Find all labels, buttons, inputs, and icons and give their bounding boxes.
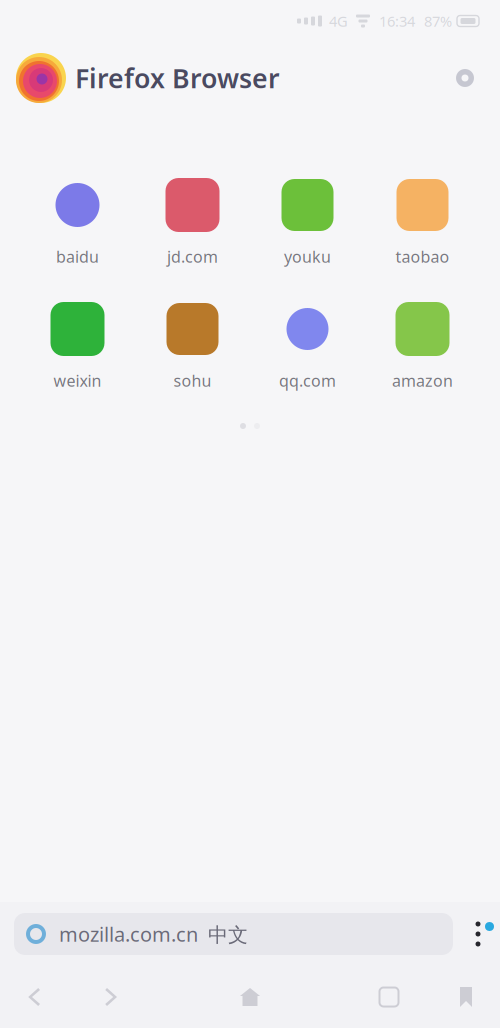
button[interactable]: Forward xyxy=(85,969,137,1025)
button[interactable]: Account xyxy=(442,55,488,101)
staticText: youku xyxy=(284,246,331,267)
staticText: qq.com xyxy=(279,370,336,391)
staticText: baidu xyxy=(56,246,99,267)
button[interactable]: Back xyxy=(8,969,60,1025)
button[interactable]: amazon xyxy=(365,302,480,410)
button[interactable]: Menu xyxy=(458,911,498,957)
staticText: jd.com xyxy=(167,246,218,267)
staticText: taobao xyxy=(395,246,449,267)
staticText: amazon xyxy=(392,370,453,391)
button[interactable]: sohu xyxy=(135,302,250,410)
staticText: mozilla.com.cn 中文 xyxy=(59,921,248,947)
button[interactable]: Home xyxy=(224,969,276,1025)
staticText: 87% xyxy=(424,11,452,31)
staticText: sohu xyxy=(173,370,211,391)
button[interactable]: taobao xyxy=(365,178,480,286)
button[interactable]: Tabs xyxy=(363,969,415,1025)
button[interactable]: qq.com xyxy=(250,302,365,410)
button[interactable]: jd.com xyxy=(135,178,250,286)
button[interactable]: weixin xyxy=(20,302,135,410)
button[interactable]: mozilla.com.cn 中文 xyxy=(14,913,453,955)
button[interactable]: baidu xyxy=(20,178,135,286)
staticText: 16:34 xyxy=(379,11,415,31)
staticText: weixin xyxy=(53,370,101,391)
button[interactable]: youku xyxy=(250,178,365,286)
staticText: 4G xyxy=(329,11,348,31)
staticText: Firefox Browser xyxy=(75,60,280,96)
button[interactable]: Bookmarks xyxy=(440,969,492,1025)
